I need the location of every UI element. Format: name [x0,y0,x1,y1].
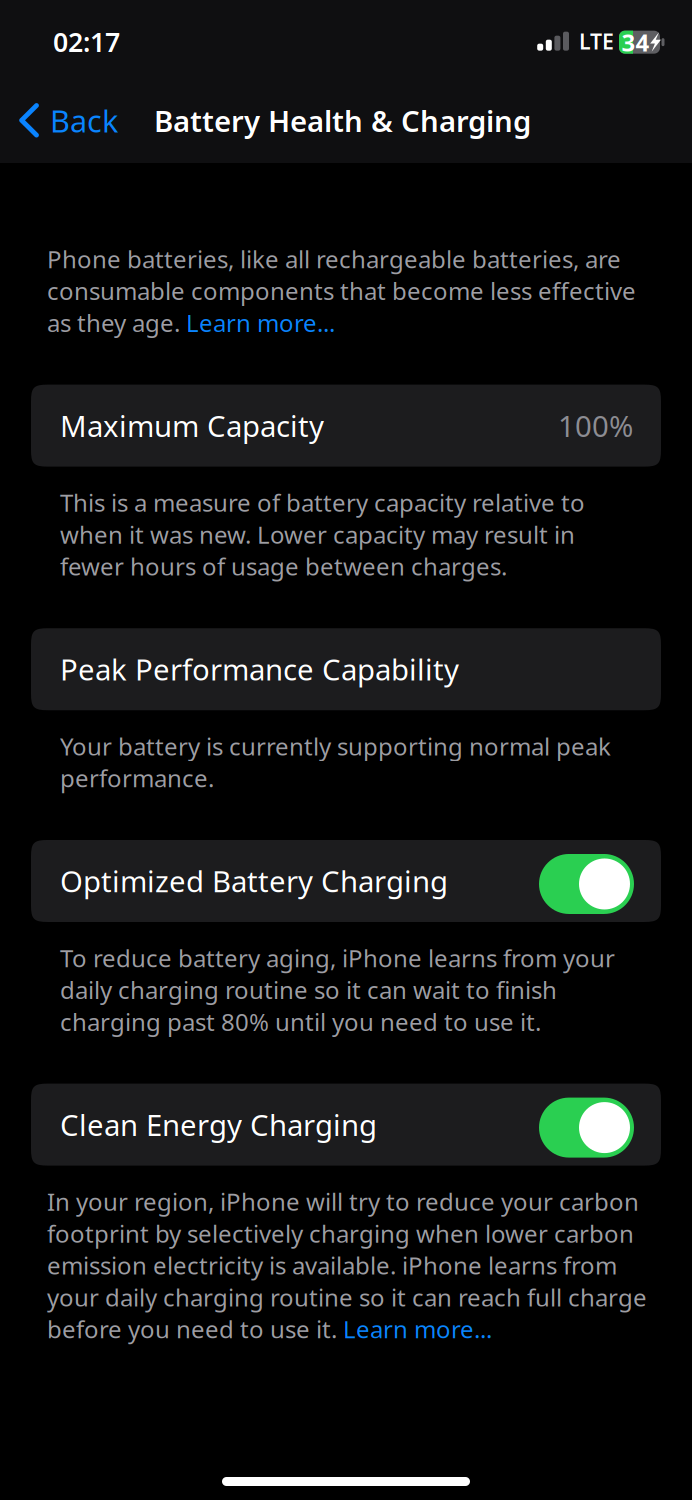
button[interactable]: Optimized Battery Charging [31,840,661,922]
staticText: 02:17 [53,24,120,59]
button[interactable]: Back [0,89,132,151]
staticText: 34 [621,26,649,58]
button[interactable]: Maximum Capacity [31,385,661,467]
staticText: To reduce battery aging, iPhone learns f… [60,942,615,1038]
staticText: Your battery is currently supporting nor… [60,730,611,794]
staticText: Battery Health & Charging [154,101,531,140]
button[interactable]: Peak Performance Capability [31,628,661,710]
staticText: 100% [558,406,633,445]
button[interactable]: Clean Energy Charging [31,1084,661,1166]
staticText: Clean Energy Charging [60,1105,377,1144]
staticText: Maximum Capacity [60,406,324,445]
staticText: Optimized Battery Charging [60,861,448,900]
staticText: This is a measure of battery capacity re… [60,487,585,582]
staticText: Peak Performance Capability [60,650,459,689]
staticText: Back [50,100,118,141]
staticText: Phone batteries, like all rechargeable b… [47,243,636,339]
staticText: LTE [579,27,614,55]
staticText: In your region, iPhone will try to reduc… [47,1186,647,1345]
